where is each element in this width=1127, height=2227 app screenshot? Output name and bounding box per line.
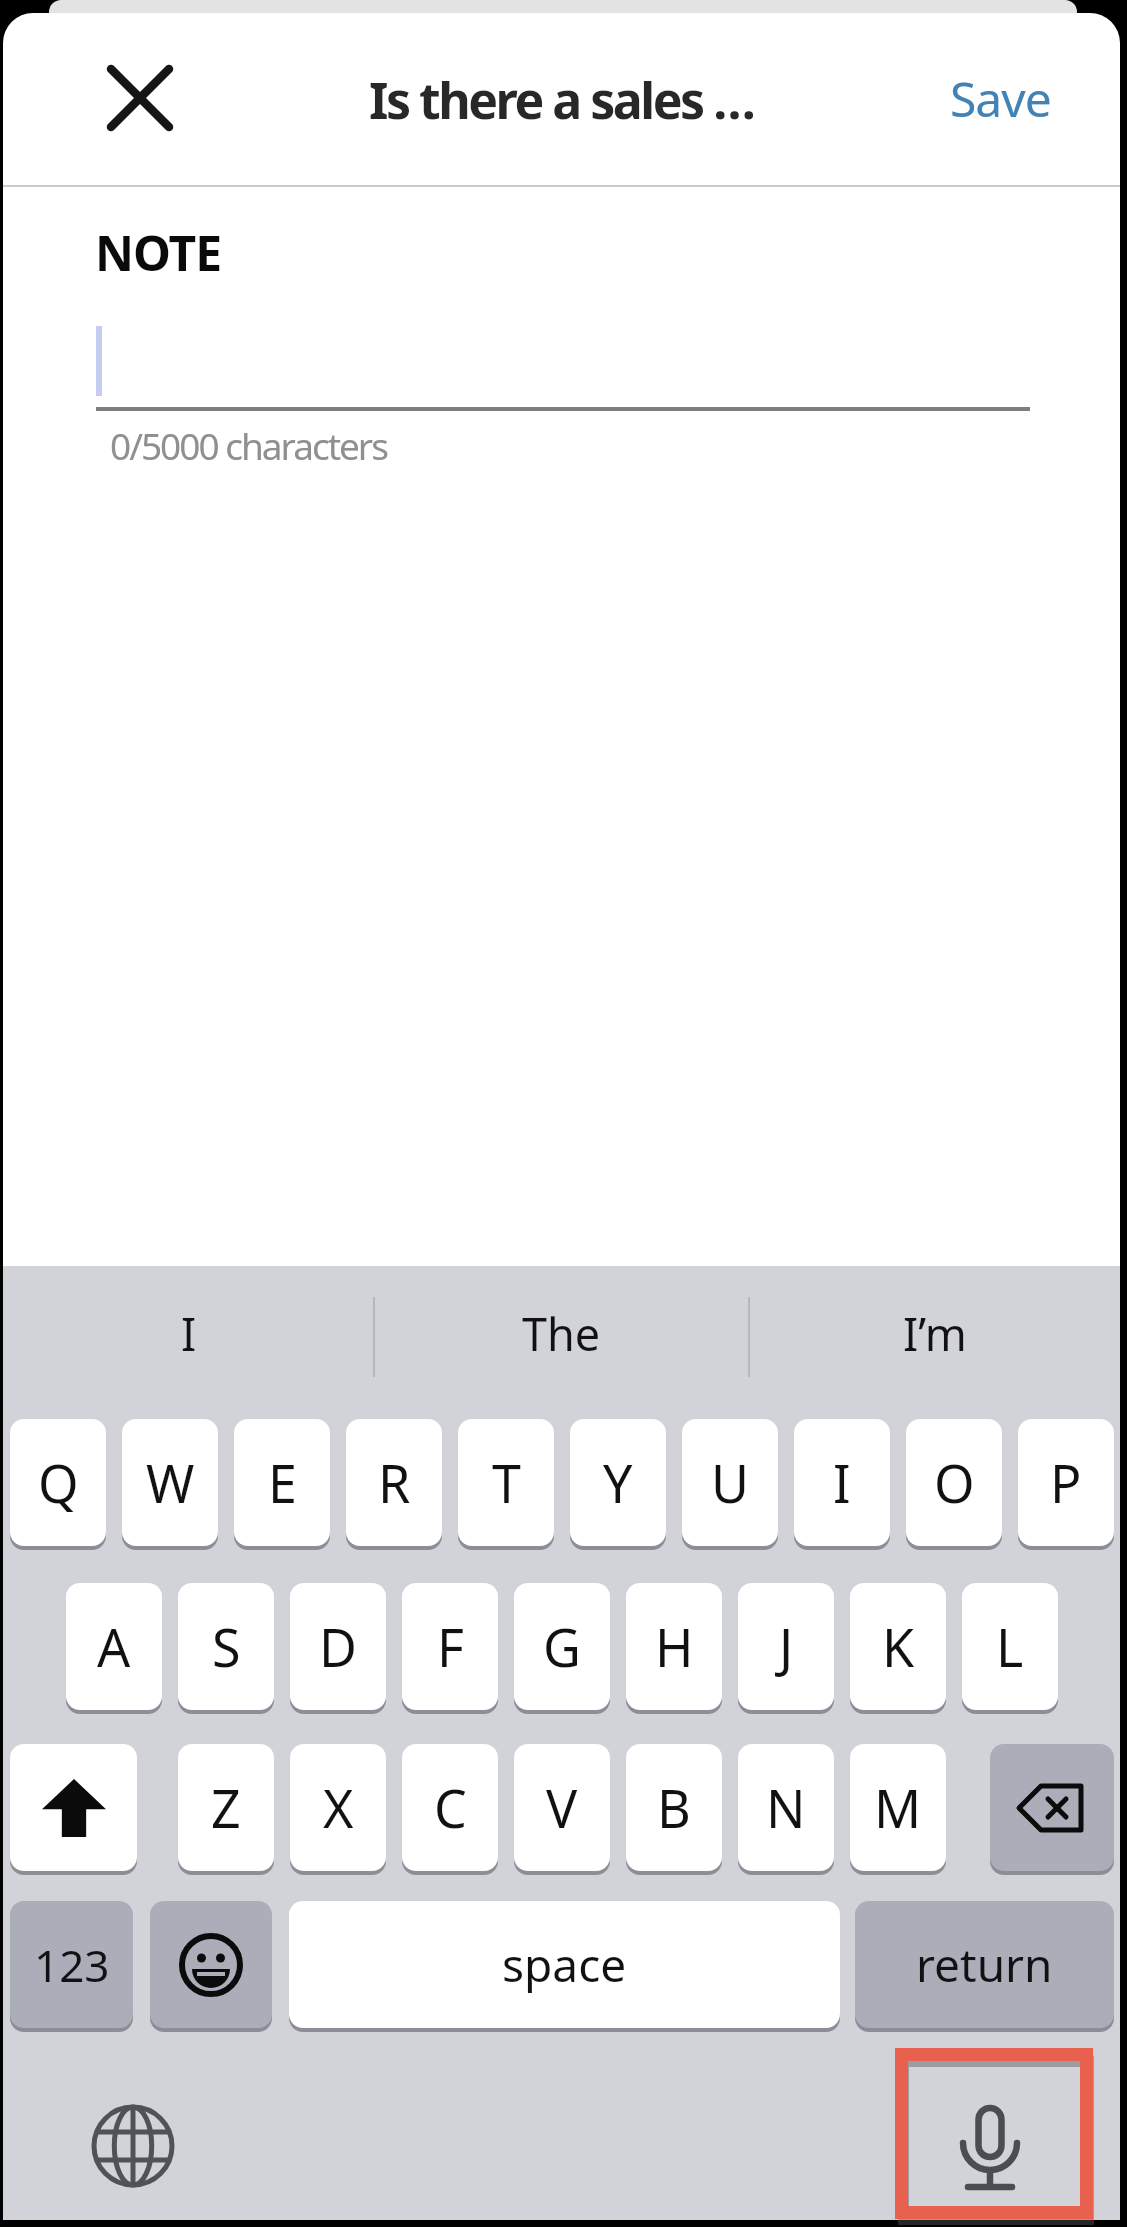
staticText: C <box>434 1772 467 1843</box>
staticText: NOTE <box>95 220 222 285</box>
staticText: V <box>546 1772 578 1843</box>
staticText: space <box>502 1933 627 1996</box>
button[interactable]: 123 <box>10 1901 133 2028</box>
button[interactable]: C <box>402 1744 498 1871</box>
button[interactable]: W <box>122 1419 218 1546</box>
button[interactable]: E <box>234 1419 330 1546</box>
staticText: S <box>212 1611 241 1682</box>
button[interactable]: Z <box>178 1744 274 1871</box>
button[interactable]: Save <box>920 48 1080 148</box>
staticText: N <box>766 1772 806 1843</box>
button[interactable]: R <box>346 1419 442 1546</box>
staticText: E <box>268 1447 297 1518</box>
staticText: A <box>97 1611 131 1682</box>
staticText: B <box>657 1772 691 1843</box>
button[interactable]: S <box>178 1583 274 1710</box>
button[interactable]: X <box>290 1744 386 1871</box>
staticText: P <box>1050 1447 1082 1518</box>
staticText: Save <box>950 66 1051 131</box>
staticText: G <box>543 1611 581 1682</box>
button[interactable] <box>73 2086 193 2206</box>
button[interactable]: N <box>738 1744 834 1871</box>
staticText: M <box>874 1772 922 1843</box>
staticText: I <box>833 1447 851 1518</box>
button[interactable] <box>928 2086 1058 2206</box>
staticText: F <box>437 1611 464 1682</box>
button[interactable] <box>10 1744 137 1871</box>
staticText: X <box>323 1772 354 1843</box>
button[interactable]: space <box>289 1901 840 2028</box>
button[interactable]: Q <box>10 1419 106 1546</box>
staticText: D <box>319 1611 357 1682</box>
staticText: W <box>146 1447 195 1518</box>
button[interactable]: V <box>514 1744 610 1871</box>
staticText: return <box>916 1933 1053 1996</box>
button[interactable]: return <box>855 1901 1114 2028</box>
button[interactable]: T <box>458 1419 554 1546</box>
staticText: L <box>996 1611 1024 1682</box>
button[interactable]: A <box>66 1583 162 1710</box>
staticText: Q <box>38 1447 79 1518</box>
button[interactable]: G <box>514 1583 610 1710</box>
button[interactable]: U <box>682 1419 778 1546</box>
staticText: Y <box>603 1447 633 1518</box>
button[interactable]: F <box>402 1583 498 1710</box>
button[interactable]: L <box>962 1583 1058 1710</box>
button[interactable] <box>150 1901 272 2028</box>
button[interactable]: K <box>850 1583 946 1710</box>
staticText: 0/5000 characters <box>110 420 387 470</box>
button[interactable]: D <box>290 1583 386 1710</box>
button[interactable] <box>96 300 1030 411</box>
staticText: U <box>711 1447 750 1518</box>
button[interactable]: The <box>374 1266 749 1400</box>
button[interactable]: J <box>738 1583 834 1710</box>
staticText: I <box>181 1303 197 1364</box>
staticText: J <box>779 1611 794 1682</box>
button[interactable]: I’m <box>749 1266 1120 1400</box>
staticText: K <box>882 1611 915 1682</box>
button[interactable]: I <box>794 1419 890 1546</box>
button[interactable]: P <box>1018 1419 1114 1546</box>
staticText: Is there a sales … <box>369 66 754 134</box>
staticText: T <box>492 1447 521 1518</box>
button[interactable]: M <box>850 1744 946 1871</box>
button[interactable]: I <box>3 1266 374 1400</box>
staticText: 123 <box>34 1935 110 1995</box>
button[interactable] <box>85 43 195 153</box>
button[interactable]: H <box>626 1583 722 1710</box>
button[interactable] <box>990 1744 1114 1871</box>
button[interactable]: O <box>906 1419 1002 1546</box>
button[interactable]: Y <box>570 1419 666 1546</box>
staticText: R <box>378 1447 411 1518</box>
staticText: H <box>655 1611 694 1682</box>
button[interactable]: B <box>626 1744 722 1871</box>
staticText: The <box>522 1303 601 1364</box>
staticText: Z <box>211 1772 241 1843</box>
staticText: O <box>934 1447 975 1518</box>
staticText: I’m <box>903 1303 967 1364</box>
